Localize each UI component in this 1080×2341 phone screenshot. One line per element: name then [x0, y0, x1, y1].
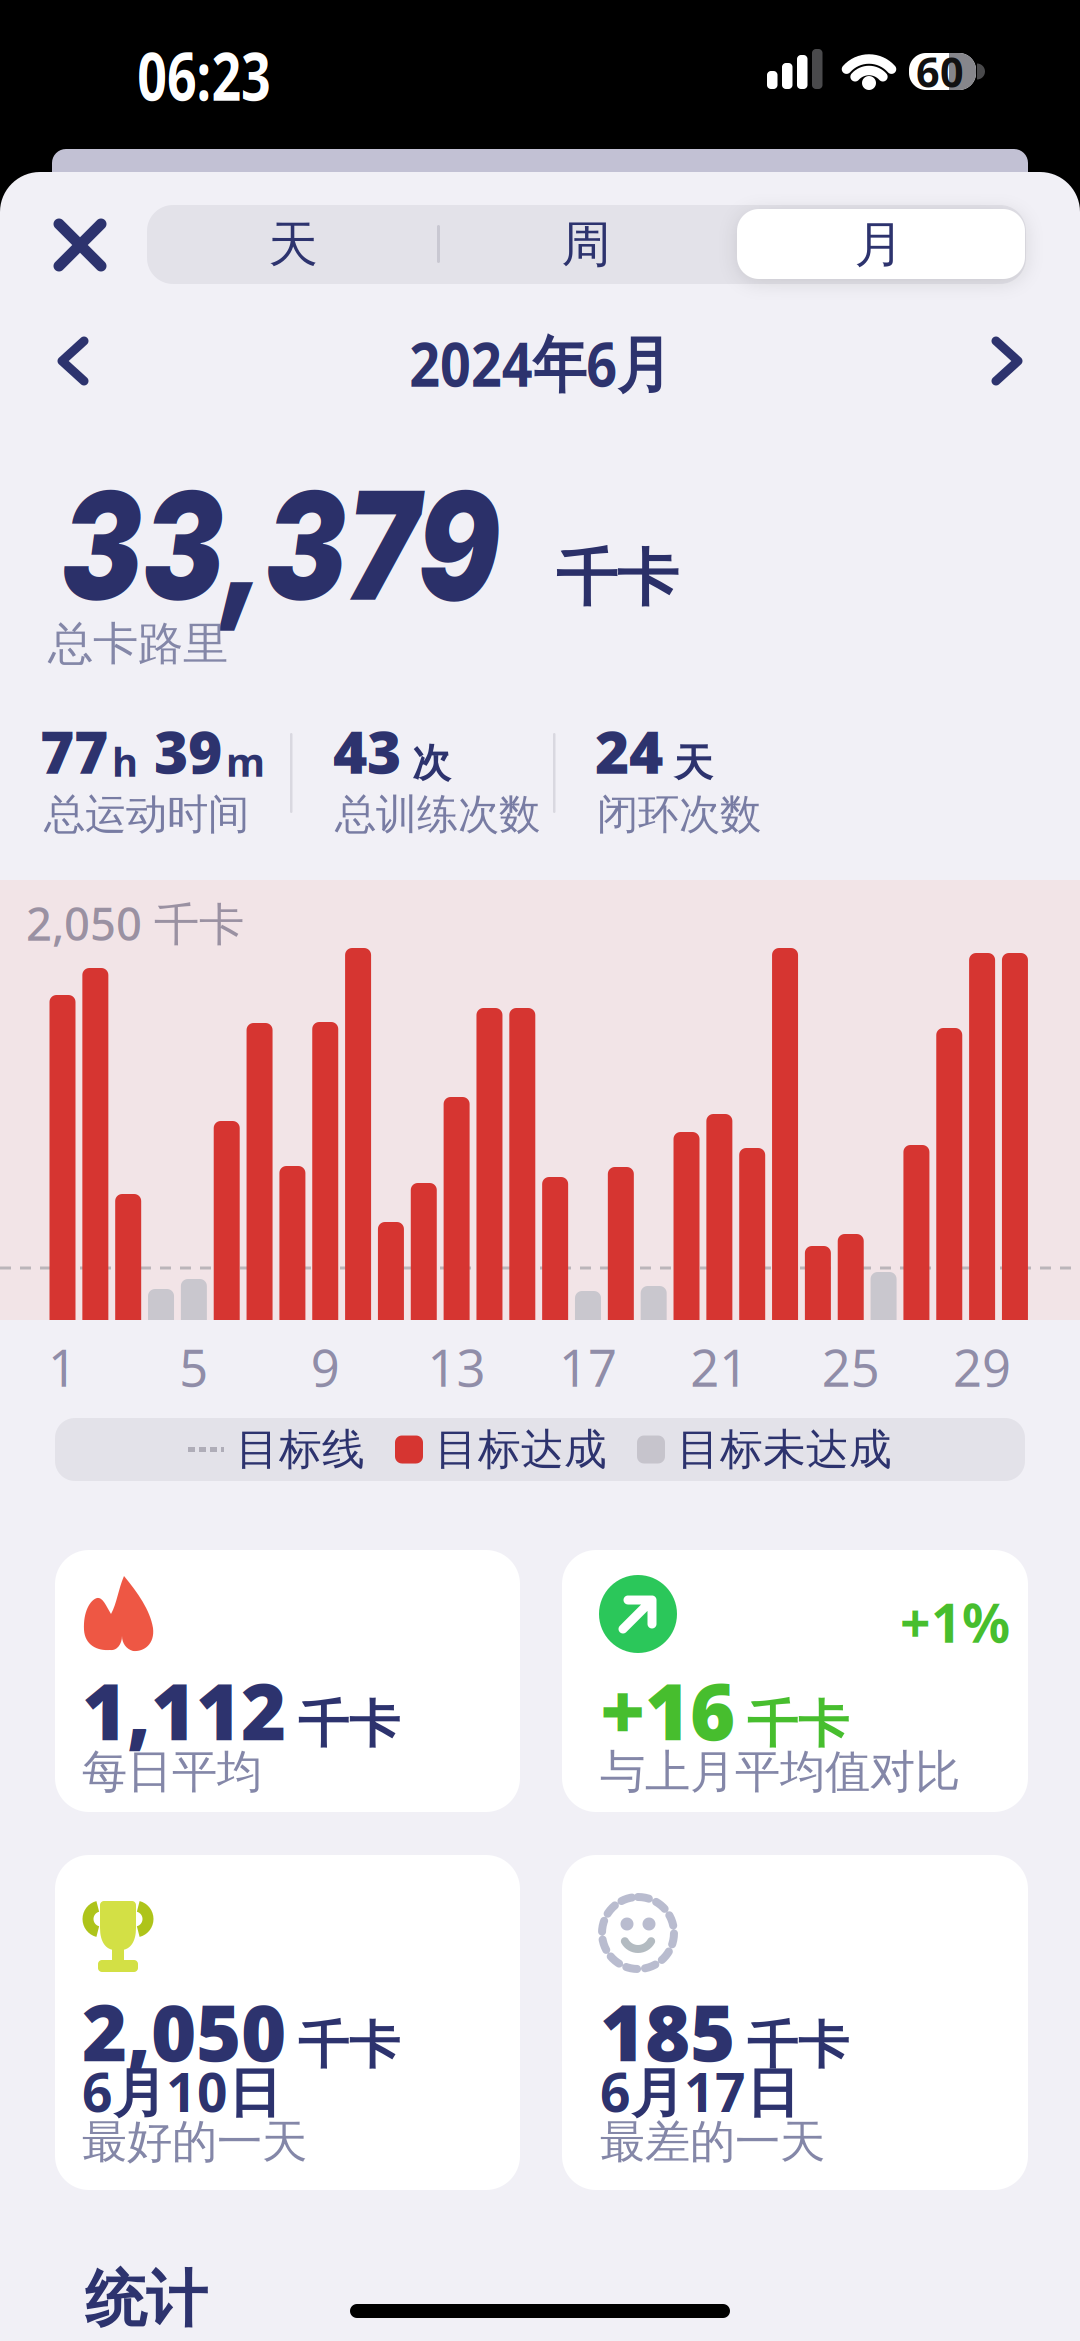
staticText: 闭环次数	[597, 789, 761, 840]
staticText: 月	[854, 214, 903, 275]
staticText: 总卡路里	[48, 616, 228, 672]
staticText: 2,050 千卡	[26, 893, 244, 953]
staticText: 最差的一天	[600, 2114, 825, 2170]
staticText: +16	[600, 1659, 735, 1762]
staticText: 06:23	[118, 31, 289, 119]
staticText: 39	[154, 712, 222, 790]
staticText: 与上月平均值对比	[600, 1744, 960, 1800]
staticText: 33,379	[61, 455, 599, 636]
staticText: 24	[595, 712, 663, 790]
staticText: m	[226, 735, 265, 788]
staticText: 天	[674, 739, 713, 787]
staticText: 千卡	[298, 2014, 400, 2077]
staticText: 6月10日	[82, 2056, 281, 2127]
staticText: 目标达成	[435, 1423, 607, 1476]
staticText: 最好的一天	[82, 2114, 307, 2170]
staticText: 周	[561, 214, 610, 275]
button[interactable]: 月	[734, 205, 1024, 284]
staticText: 总运动时间	[44, 789, 249, 840]
staticText: 13	[428, 1333, 486, 1401]
staticText: 统计	[85, 2262, 207, 2337]
staticText: 每日平均	[82, 1744, 262, 1800]
staticText: 29	[953, 1333, 1011, 1401]
staticText: 千卡	[556, 541, 678, 616]
staticText: 5	[179, 1333, 208, 1401]
button[interactable]: Next month	[974, 316, 1040, 406]
staticText: 185	[600, 1980, 735, 2083]
staticText: 17	[559, 1333, 617, 1401]
staticText: 2,050	[82, 1980, 286, 2083]
button[interactable]: Close	[38, 208, 122, 282]
staticText: 6月17日	[600, 2056, 799, 2127]
staticText: 60	[916, 44, 964, 99]
staticText: 目标线	[236, 1423, 365, 1476]
staticText: 千卡	[747, 2014, 849, 2077]
staticText: +1%	[900, 1587, 1010, 1657]
staticText: 21	[690, 1333, 748, 1401]
staticText: 千卡	[298, 1693, 400, 1756]
staticText: 25	[822, 1333, 880, 1401]
staticText: 2024年6月	[391, 322, 688, 404]
staticText: 77	[40, 712, 108, 790]
staticText: 1	[48, 1333, 77, 1401]
staticText: 千卡	[747, 1693, 849, 1756]
button[interactable]: 周	[441, 205, 731, 284]
staticText: 天	[268, 214, 317, 275]
button[interactable]: Previous month	[40, 316, 106, 406]
staticText: 目标未达成	[677, 1423, 892, 1476]
staticText: h	[112, 735, 138, 788]
button[interactable]: 天	[148, 205, 438, 284]
staticText: 1,112	[82, 1659, 286, 1762]
staticText: 次	[412, 739, 451, 787]
staticText: 43	[333, 712, 401, 790]
staticText: 总训练次数	[335, 789, 540, 840]
staticText: 9	[311, 1333, 340, 1401]
